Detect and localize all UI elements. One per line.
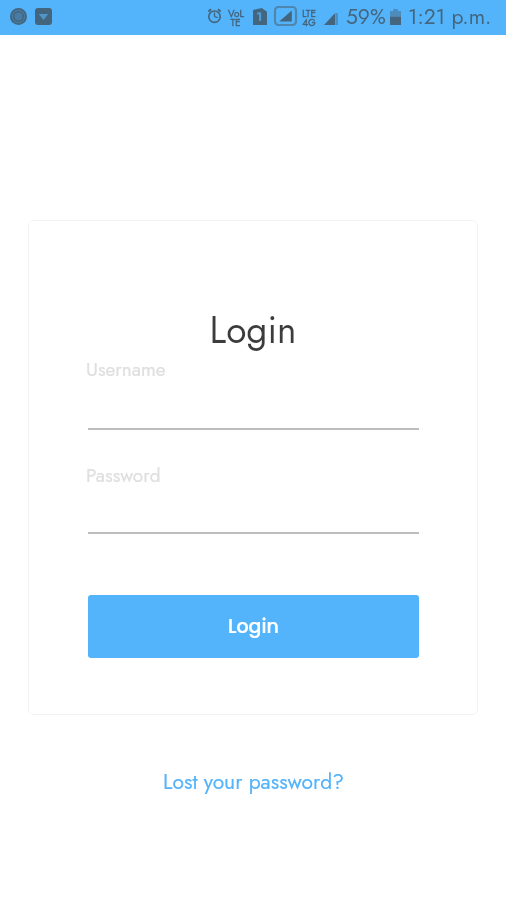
staticText: 1:21 p.m. <box>408 2 492 32</box>
staticText: 4G <box>302 15 316 29</box>
staticText: Login <box>28 303 478 356</box>
button[interactable]: Lost your password? <box>153 762 354 802</box>
staticText: LTE <box>302 6 316 20</box>
staticText: 59% <box>346 2 386 32</box>
staticText: TE <box>230 15 241 29</box>
button[interactable]: Username <box>88 352 419 430</box>
staticText: Username <box>86 356 166 383</box>
staticText: VoL <box>228 6 244 20</box>
button[interactable]: Password <box>88 456 419 534</box>
staticText: Lost your password? <box>163 767 344 797</box>
other: Message <box>35 8 52 25</box>
other: Notification <box>10 8 27 25</box>
staticText: Password <box>86 462 161 489</box>
button[interactable]: Login <box>88 595 419 658</box>
staticText: Login <box>228 613 279 640</box>
